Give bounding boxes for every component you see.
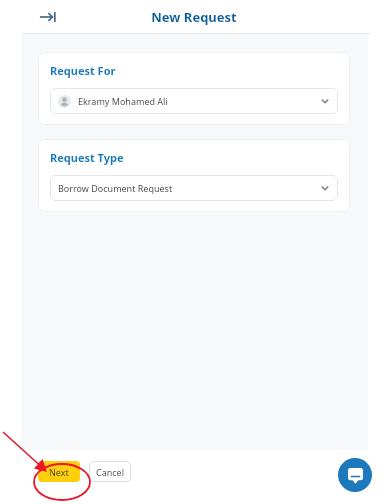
staticText: Cancel: [96, 466, 125, 478]
button[interactable]: Collapse menu: [36, 5, 60, 29]
staticText: Ekramy Mohamed Ali: [78, 95, 320, 107]
button[interactable]: Cancel: [89, 461, 131, 482]
staticText: Request For: [50, 63, 116, 78]
button[interactable]: Ekramy Mohamed Ali: [50, 88, 338, 114]
button[interactable]: Next: [38, 461, 80, 482]
staticText: Borrow Document Request: [58, 182, 320, 194]
staticText: Request Type: [50, 150, 124, 165]
button[interactable]: Open chat: [338, 458, 372, 492]
staticText: New Request: [151, 8, 237, 26]
staticText: Next: [49, 466, 69, 478]
button[interactable]: Borrow Document Request: [50, 175, 338, 201]
